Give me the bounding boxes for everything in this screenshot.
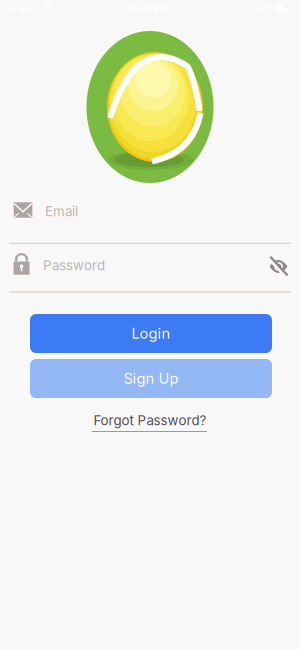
staticText: Login: [131, 325, 170, 342]
button[interactable]: Email: [9, 201, 291, 243]
button[interactable]: Sign Up: [30, 359, 272, 398]
staticText: Forgot Password?: [93, 413, 206, 428]
staticText: Email: [45, 204, 78, 219]
staticText: Sign Up: [123, 370, 178, 387]
button[interactable]: Show password: [268, 255, 289, 277]
button[interactable]: Password: [9, 250, 291, 292]
button[interactable]: Login: [30, 314, 272, 353]
button[interactable]: Forgot Password?: [93, 413, 206, 428]
staticText: Password: [43, 257, 105, 273]
